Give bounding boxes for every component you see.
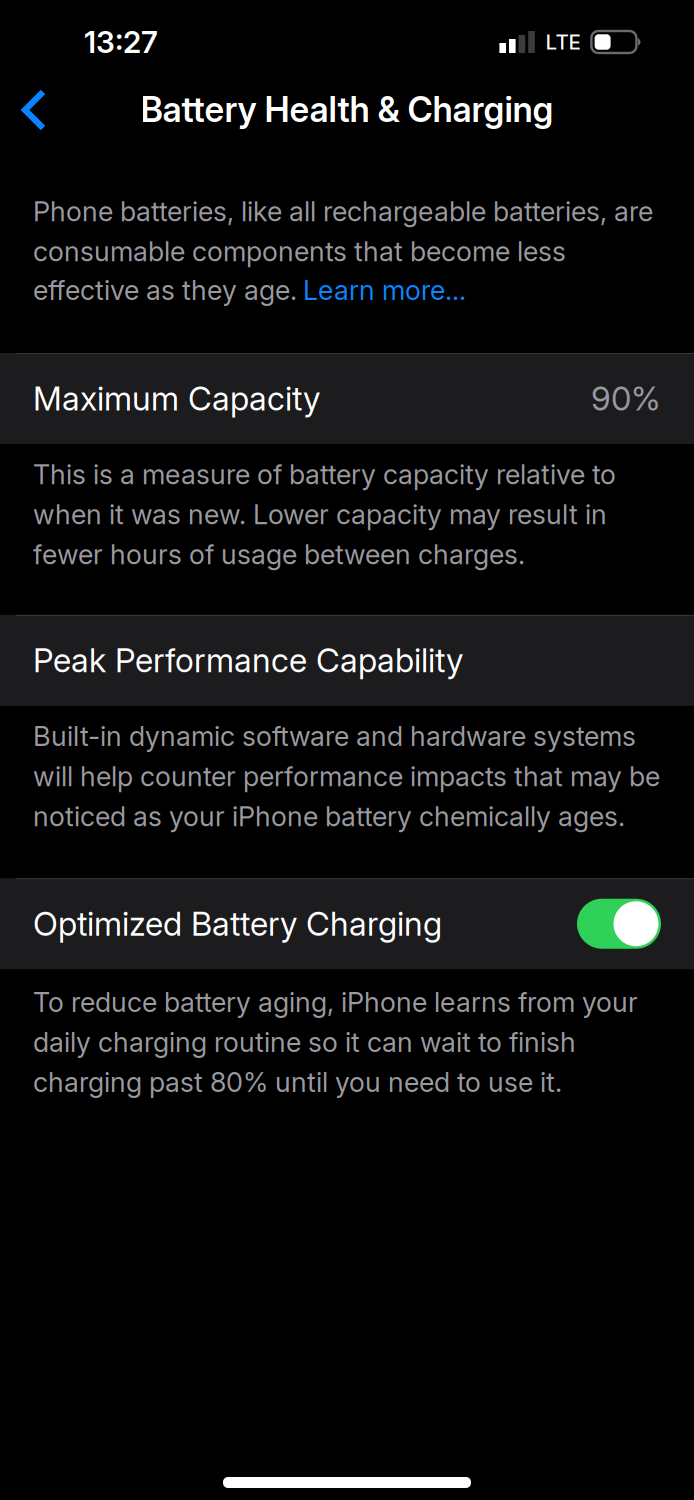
- staticText: LTE: [545, 30, 580, 54]
- button[interactable]: Maximum Capacity: [0, 353, 694, 444]
- staticText: Maximum Capacity: [33, 379, 320, 418]
- staticText: Peak Performance Capability: [33, 641, 463, 680]
- button[interactable]: Back: [0, 73, 66, 143]
- button[interactable]: Learn more...: [297, 274, 466, 306]
- staticText: Phone batteries, like all rechargeable b…: [33, 195, 653, 268]
- staticText: To reduce battery aging, iPhone learns f…: [33, 986, 638, 1098]
- staticText: Built-in dynamic software and hardware s…: [33, 720, 660, 833]
- button[interactable]: Peak Performance Capability: [0, 615, 694, 706]
- staticText: 90%: [591, 379, 661, 418]
- staticText: This is a measure of battery capacity re…: [33, 458, 616, 571]
- staticText: 13:27: [84, 24, 158, 60]
- button[interactable]: Optimized Battery Charging: [0, 878, 694, 969]
- staticText: Learn more...: [303, 274, 466, 306]
- staticText: Optimized Battery Charging: [33, 904, 442, 944]
- staticText: Battery Health & Charging: [140, 88, 553, 130]
- staticText: effective as they age.: [33, 274, 297, 306]
